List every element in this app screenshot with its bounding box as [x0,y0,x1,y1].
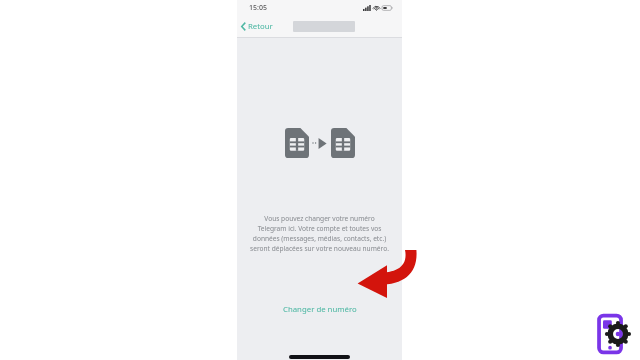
button[interactable]: Retour [237,18,279,35]
staticText: Vous pouvez changer votre numéro Telegra… [250,214,389,252]
button[interactable]: Changer de numéro [273,300,367,319]
staticText: Changer de numéro [283,304,357,315]
other: Watermark logo [592,312,636,356]
staticText: Retour [248,21,273,32]
staticText: 15:05 [249,3,267,13]
